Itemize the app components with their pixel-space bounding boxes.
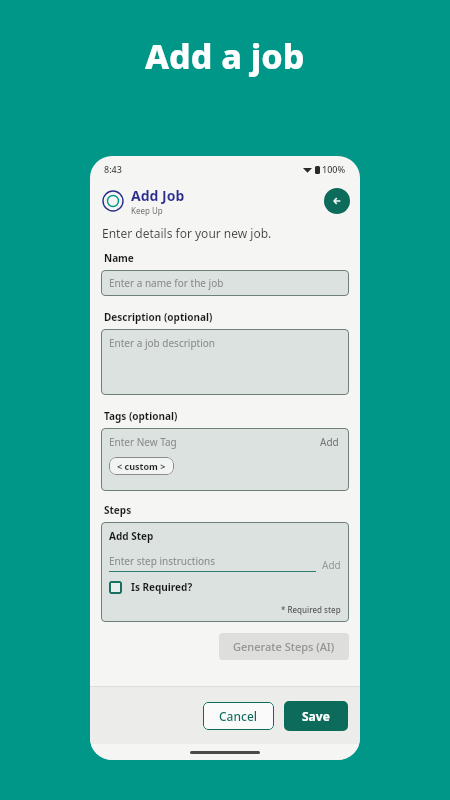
staticText: Enter New Tag <box>109 435 177 449</box>
staticText: Is Required? <box>131 580 193 594</box>
staticText: Enter step instructions <box>109 554 215 568</box>
staticText: Cancel <box>219 708 258 724</box>
staticText: < custom > <box>117 460 166 472</box>
staticText: Add Job <box>131 186 185 205</box>
button[interactable]: Add <box>318 435 341 449</box>
staticText: Name <box>104 251 134 265</box>
staticText: Add <box>320 435 339 449</box>
staticText: Steps <box>104 503 132 517</box>
button[interactable]: Add <box>322 558 341 572</box>
staticText: Generate Steps (AI) <box>233 639 335 654</box>
button[interactable]: Is Required? <box>109 580 193 594</box>
staticText: Enter details for your new job. <box>102 225 272 241</box>
staticText: Keep Up <box>131 205 163 216</box>
button[interactable]: Enter a job description <box>101 329 349 395</box>
button[interactable]: Enter a name for the job <box>101 270 349 296</box>
staticText: Save <box>302 708 330 724</box>
button[interactable]: Generate Steps (AI) <box>219 633 349 660</box>
button[interactable]: Back <box>324 188 350 214</box>
staticText: * Required step <box>281 604 341 615</box>
staticText: Description (optional) <box>104 310 213 324</box>
staticText: 100% <box>322 163 346 175</box>
staticText: 8:43 <box>104 163 122 175</box>
staticText: Enter a job description <box>109 336 215 350</box>
staticText: Add Step <box>109 529 154 543</box>
staticText: Enter a name for the job <box>109 276 224 290</box>
staticText: Add a job <box>145 33 305 79</box>
button[interactable]: Cancel <box>203 702 274 730</box>
button[interactable]: Save <box>284 701 348 731</box>
staticText: Tags (optional) <box>104 409 178 423</box>
button[interactable]: < custom > <box>109 457 174 475</box>
staticText: Add <box>322 558 341 572</box>
